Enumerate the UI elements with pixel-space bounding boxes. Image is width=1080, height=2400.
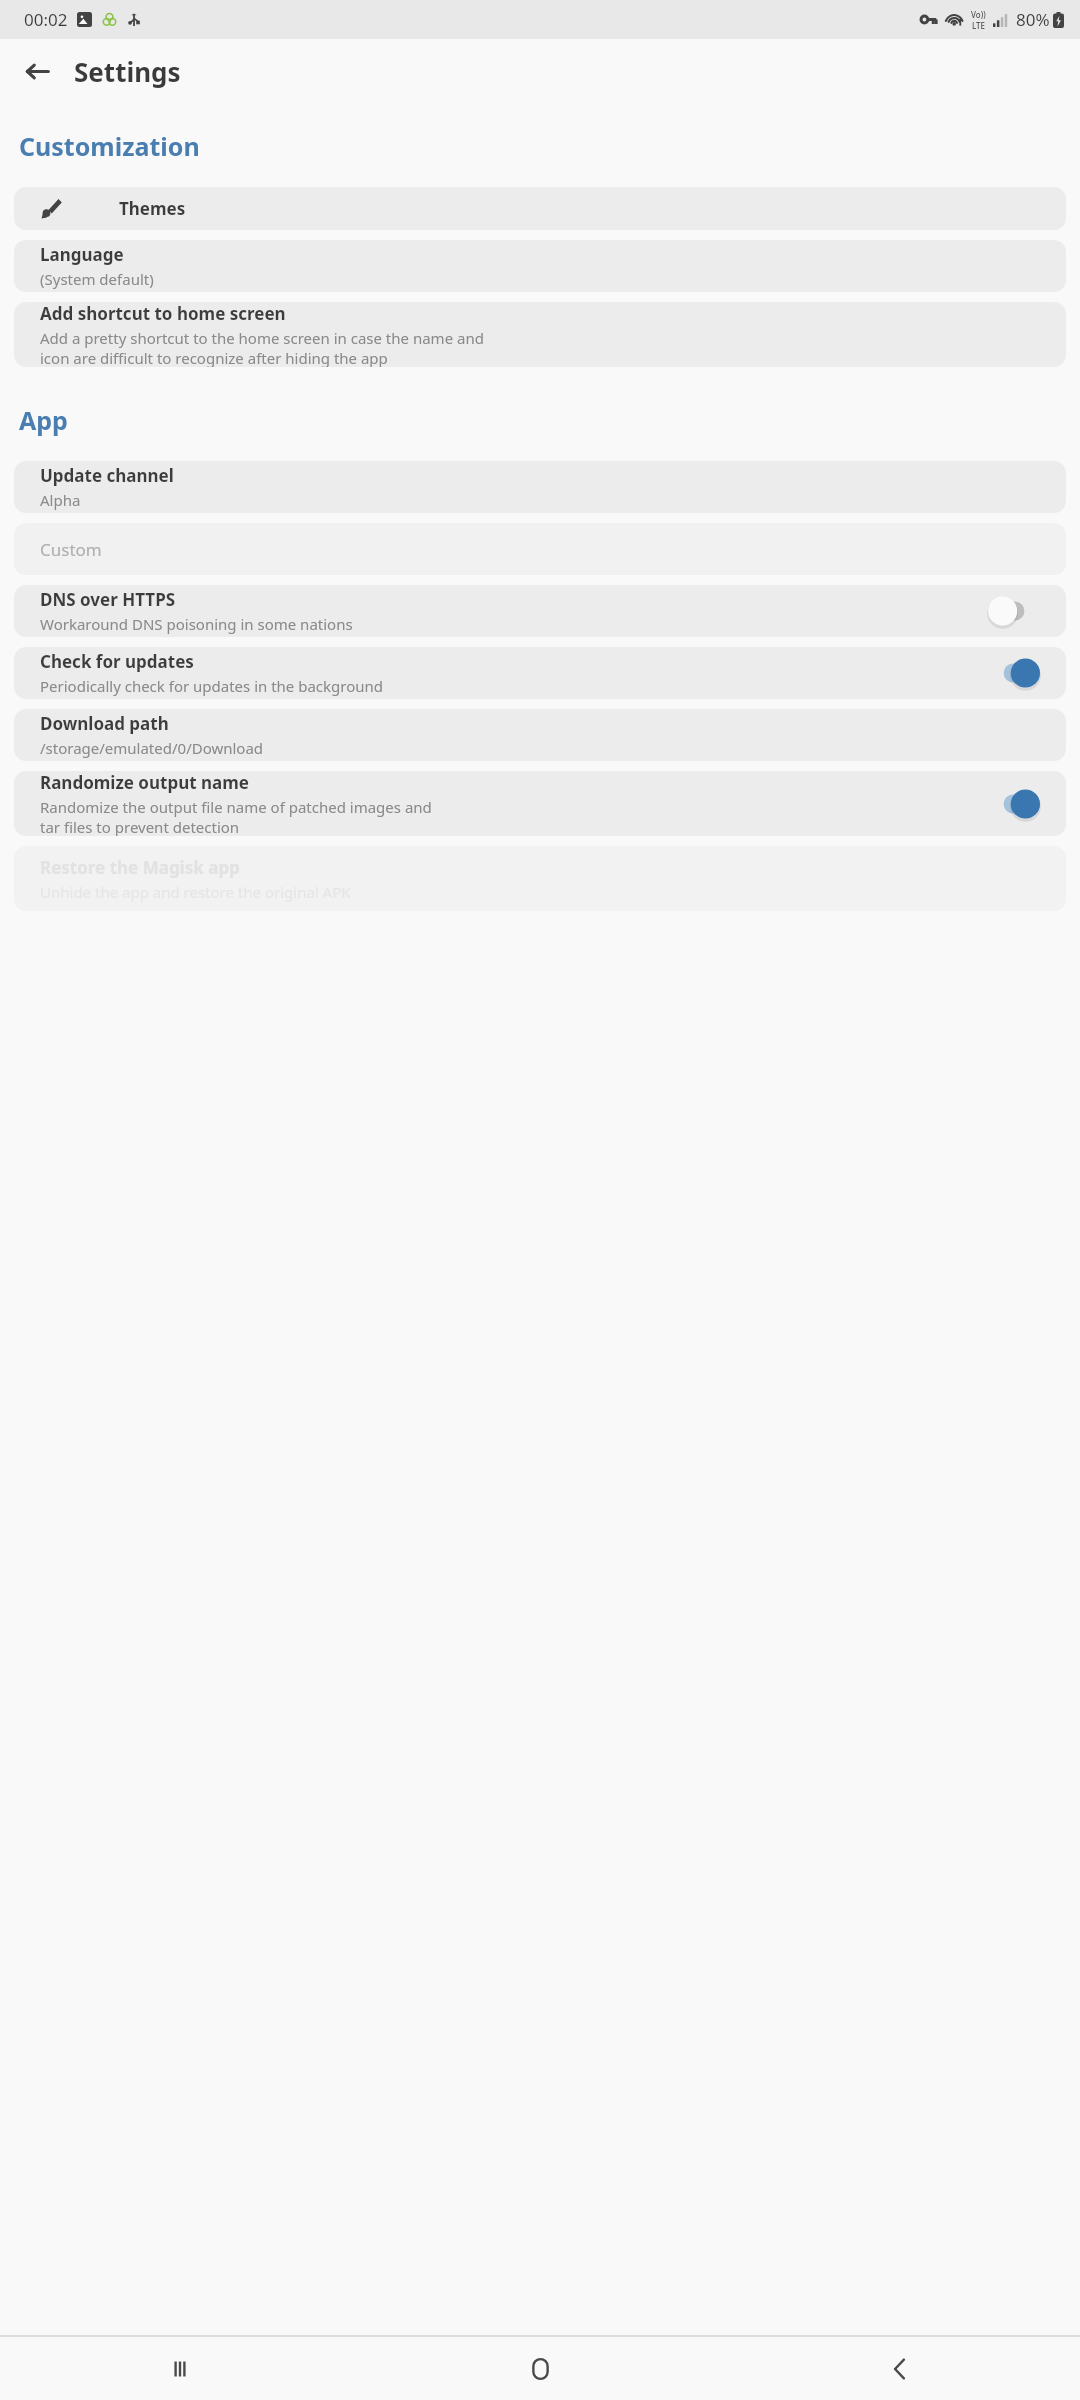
staticText: Custom: [40, 538, 102, 561]
button[interactable]: Randomize output name: [14, 771, 1066, 836]
staticText: Update channel: [40, 464, 174, 487]
staticText: (System default): [40, 269, 154, 289]
button[interactable]: Themes: [14, 187, 1066, 230]
staticText: DNS over HTTPS: [40, 588, 176, 611]
staticText: Language: [40, 243, 124, 266]
button[interactable]: DNS over HTTPS: [14, 585, 1066, 637]
staticText: Randomize output name: [40, 771, 249, 794]
button[interactable]: On: [988, 656, 1040, 690]
staticText: /storage/emulated/0/Download: [40, 738, 264, 758]
button[interactable]: Update channel: [14, 461, 1066, 513]
staticText: Add a pretty shortcut to the home screen…: [40, 328, 484, 367]
staticText: Check for updates: [40, 650, 194, 673]
staticText: Download path: [40, 712, 169, 735]
staticText: Unhide the app and restore the original …: [40, 882, 351, 902]
staticText: App: [19, 403, 68, 437]
button[interactable]: Download path: [14, 709, 1066, 761]
button[interactable]: Recent apps: [0, 2337, 360, 2400]
button[interactable]: Back: [720, 2337, 1080, 2400]
button[interactable]: Check for updates: [14, 647, 1066, 699]
staticText: Themes: [119, 197, 186, 220]
button[interactable]: Language: [14, 240, 1066, 292]
staticText: Add shortcut to home screen: [40, 302, 286, 325]
staticText: 00:02: [24, 8, 68, 31]
staticText: Alpha: [40, 490, 81, 510]
button[interactable]: Back: [13, 47, 61, 95]
staticText: Periodically check for updates in the ba…: [40, 676, 384, 696]
staticText: LTE: [972, 20, 986, 31]
button[interactable]: Home: [360, 2337, 720, 2400]
staticText: 80%: [1016, 8, 1050, 31]
button[interactable]: On: [988, 787, 1040, 821]
staticText: Randomize the output file name of patche…: [40, 797, 432, 836]
staticText: Settings: [74, 54, 181, 89]
staticText: Restore the Magisk app: [40, 856, 240, 879]
button[interactable]: Off: [988, 594, 1040, 628]
button[interactable]: Add shortcut to home screen: [14, 302, 1066, 367]
staticText: Workaround DNS poisoning in some nations: [40, 614, 353, 634]
staticText: Customization: [19, 129, 200, 163]
button[interactable]: Custom: [14, 523, 1066, 575]
staticText: Vo)): [971, 9, 986, 20]
